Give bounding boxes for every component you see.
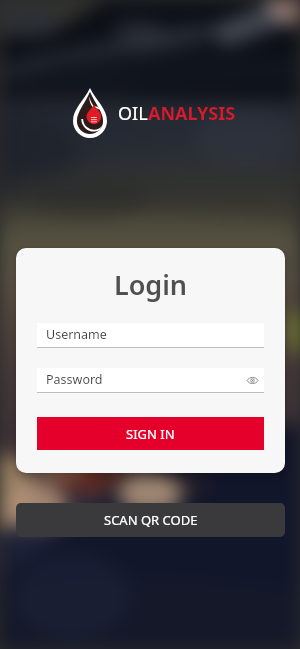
staticText: Username: [46, 326, 107, 343]
staticText: OIL: [118, 101, 148, 126]
staticText: SIGN IN: [126, 425, 175, 443]
button[interactable]: Password: [37, 368, 264, 392]
staticText: Password: [46, 371, 103, 388]
button[interactable]: Show password: [243, 368, 262, 392]
button[interactable]: Username: [37, 323, 264, 347]
button[interactable]: SCAN QR CODE: [16, 503, 285, 537]
staticText: Login: [37, 266, 264, 303]
staticText: ANALYSIS: [148, 101, 236, 126]
staticText: SCAN QR CODE: [104, 511, 198, 529]
button[interactable]: SIGN IN: [37, 417, 264, 450]
